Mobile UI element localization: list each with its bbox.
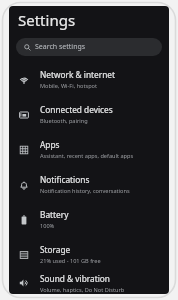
staticText: Storage bbox=[40, 244, 71, 255]
staticText: Notification history, conversations bbox=[40, 187, 130, 195]
other: Storage bbox=[19, 250, 29, 260]
other: Notifications bbox=[19, 180, 29, 190]
button[interactable]: Sound & vibration bbox=[9, 272, 169, 294]
button[interactable]: Search bbox=[16, 38, 162, 56]
other: Search bbox=[24, 44, 31, 51]
other: Sound & vibration bbox=[19, 278, 29, 288]
staticText: Apps bbox=[40, 139, 60, 150]
staticText: Settings bbox=[18, 10, 76, 30]
button[interactable]: Storage bbox=[9, 237, 169, 272]
button[interactable]: Network & internet bbox=[9, 62, 169, 97]
staticText: Bluetooth, pairing bbox=[40, 117, 88, 125]
staticText: Mobile, Wi-Fi, hotspot bbox=[40, 82, 98, 90]
button[interactable]: Notifications bbox=[9, 167, 169, 202]
staticText: Assistant, recent apps, default apps bbox=[40, 152, 134, 160]
other: Battery bbox=[19, 215, 29, 225]
staticText: Connected devices bbox=[40, 104, 113, 115]
staticText: Network & internet bbox=[40, 69, 115, 80]
other: Apps bbox=[19, 145, 29, 155]
staticText: 21% used - 101 GB free bbox=[40, 257, 101, 265]
button[interactable]: Apps bbox=[9, 132, 169, 167]
button[interactable]: Battery bbox=[9, 202, 169, 237]
staticText: Volume, haptics, Do Not Disturb bbox=[40, 286, 125, 294]
staticText: Notifications bbox=[40, 174, 90, 185]
button[interactable]: Connected devices bbox=[9, 97, 169, 132]
staticText: 100% bbox=[40, 222, 55, 230]
staticText: Search settings bbox=[35, 42, 86, 52]
staticText: Sound & vibration bbox=[40, 273, 110, 284]
staticText: Battery bbox=[40, 209, 69, 220]
other: Connected devices bbox=[19, 110, 29, 120]
other: Network & internet bbox=[19, 75, 29, 85]
